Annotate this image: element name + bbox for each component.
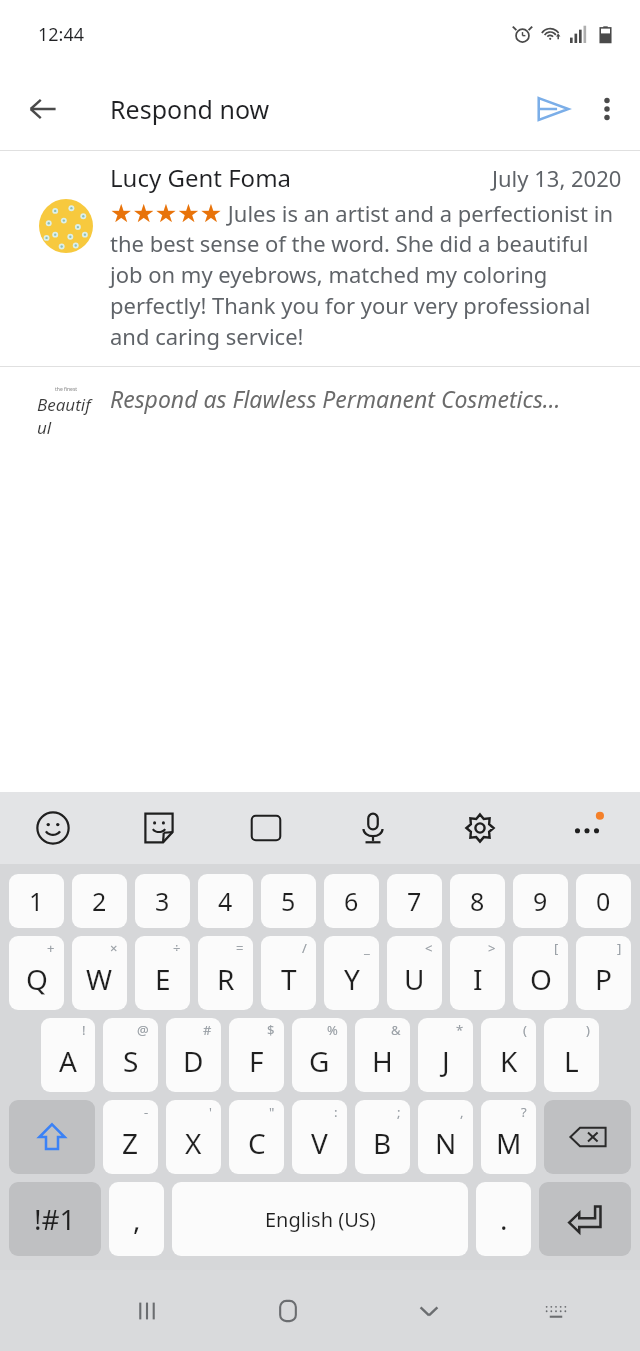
button[interactable]: 7 [387,874,442,928]
button[interactable]: ] [576,936,631,1010]
staticText: Lucy Gent Foma [110,161,292,194]
button[interactable]: < [387,936,442,1010]
button[interactable]: > [450,936,505,1010]
staticText: U [404,960,425,998]
button[interactable]: ( [481,1018,536,1092]
button[interactable]: [ [513,936,568,1010]
staticText: V [311,1124,328,1162]
button[interactable]: . [476,1182,531,1256]
staticText: G [309,1042,330,1080]
button[interactable]: / [261,936,316,1010]
button[interactable]: ; [355,1100,410,1174]
staticText: 12:44 [38,22,85,47]
button[interactable]: % [292,1018,347,1092]
staticText: / [302,939,307,957]
button[interactable]: + [9,936,64,1010]
staticText: !#1 [34,1200,76,1238]
staticText: Q [26,960,48,998]
staticText: 4 [218,884,233,918]
staticText: ( [523,1021,527,1039]
button[interactable]: the finest [0,367,640,455]
button[interactable]: 2 [72,874,127,928]
staticText: I [473,960,483,998]
staticText: ] [617,939,622,957]
staticText: = [236,939,244,957]
staticText: D [183,1042,204,1080]
button[interactable]: Backspace [544,1100,631,1174]
button[interactable]: Home [217,1270,358,1351]
staticText: % [327,1021,338,1039]
staticText: Respond now [110,92,270,126]
button[interactable]: * [418,1018,473,1092]
staticText: : [334,1103,338,1121]
button[interactable]: × [72,936,127,1010]
staticText: S [123,1042,139,1080]
staticText: $ [267,1021,275,1039]
button[interactable]: Keyboard settings [426,792,533,864]
staticText: Respond as Flawless Permanent Cosmetics… [110,383,622,414]
button[interactable]: Emoji [0,792,106,864]
button[interactable]: 1 [9,874,64,928]
staticText: < [425,939,433,957]
staticText: , [133,1200,141,1238]
button[interactable]: Shift [9,1100,95,1174]
button[interactable]: English (US) [172,1182,468,1256]
button[interactable]: ! [41,1018,95,1092]
staticText: X [185,1124,202,1162]
staticText: W [86,960,113,998]
button[interactable]: # [166,1018,221,1092]
staticText: [ [554,939,559,957]
button[interactable]: ' [166,1100,221,1174]
staticText: 3 [155,884,170,918]
button[interactable]: 5 [261,874,316,928]
staticText: H [372,1042,393,1080]
button[interactable]: More options [582,80,632,138]
button[interactable]: 9 [513,874,568,928]
button[interactable]: 0 [576,874,631,928]
staticText: * [456,1021,464,1039]
button[interactable]: 6 [324,874,379,928]
staticText: L [564,1042,579,1080]
button[interactable]: _ [324,936,379,1010]
button[interactable]: " [229,1100,284,1174]
button[interactable]: & [355,1018,410,1092]
button[interactable]: Change keyboard [499,1270,612,1351]
button[interactable]: ÷ [135,936,190,1010]
staticText: _ [364,939,370,957]
button[interactable]: , [109,1182,164,1256]
button[interactable]: - [103,1100,158,1174]
staticText: . [500,1200,508,1238]
button[interactable]: 4 [198,874,253,928]
button[interactable]: ) [544,1018,599,1092]
staticText: M [496,1124,522,1162]
button[interactable]: Stickers [106,792,212,864]
button[interactable]: $ [229,1018,284,1092]
staticText: the finest [55,386,78,393]
button[interactable]: Back [14,80,72,138]
button[interactable]: 3 [135,874,190,928]
button[interactable]: @ [103,1018,158,1092]
staticText: 9 [533,884,548,918]
staticText: ? [521,1103,527,1121]
button[interactable]: !#1 [9,1182,101,1256]
button[interactable]: : [292,1100,347,1174]
staticText: R [217,960,235,998]
button[interactable]: Hide keyboard [358,1270,499,1351]
button[interactable]: More [533,792,640,864]
button[interactable]: , [418,1100,473,1174]
staticText: ' [209,1103,212,1121]
staticText: Y [344,960,360,998]
staticText: & [391,1021,401,1039]
button[interactable]: ? [481,1100,536,1174]
button[interactable]: Voice input [319,792,426,864]
button[interactable]: Send [524,80,582,138]
staticText: C [248,1124,266,1162]
staticText: E [155,960,171,998]
button[interactable]: Enter [539,1182,631,1256]
button[interactable]: Recent apps [76,1270,217,1351]
button[interactable]: 8 [450,874,505,928]
staticText: Z [122,1124,139,1162]
staticText: F [249,1042,264,1080]
button[interactable]: GIF [212,792,319,864]
button[interactable]: = [198,936,253,1010]
